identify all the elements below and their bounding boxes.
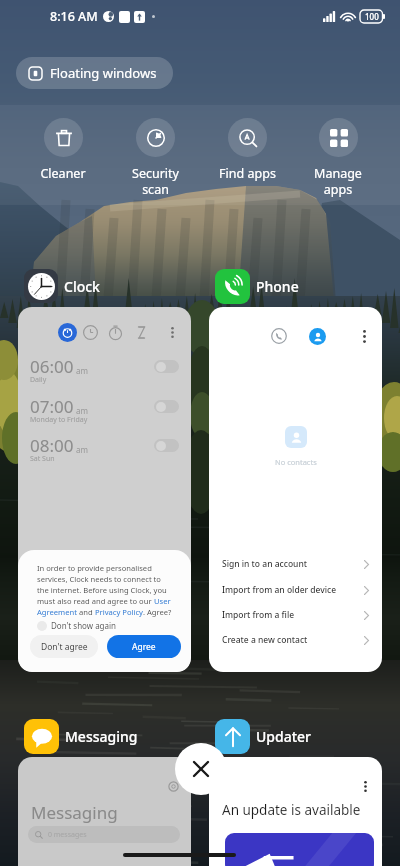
button[interactable]: Import from a file bbox=[209, 602, 382, 628]
staticText: 0 messages bbox=[48, 830, 87, 840]
staticText: Privacy Policy bbox=[95, 607, 143, 617]
staticText: User bbox=[154, 596, 171, 606]
staticText: 08:00 bbox=[30, 434, 74, 457]
staticText: am bbox=[76, 444, 88, 455]
staticText: Daily bbox=[30, 375, 47, 385]
button[interactable]: An update is available bbox=[209, 757, 382, 866]
button[interactable]: Agree bbox=[107, 635, 181, 658]
staticText: Sign in to an account bbox=[222, 558, 307, 570]
staticText: Don't show again bbox=[51, 620, 117, 631]
staticText: am bbox=[76, 405, 88, 416]
staticText: . Agree? bbox=[143, 607, 172, 617]
staticText: Phone bbox=[256, 277, 299, 296]
staticText: Agree bbox=[132, 641, 156, 653]
button[interactable]: 07:00 bbox=[18, 393, 191, 431]
staticText: the internet. Before using Clock, you bbox=[37, 585, 167, 595]
staticText: Cleaner bbox=[40, 165, 86, 182]
staticText: Floating windows bbox=[50, 64, 157, 82]
staticText: Messaging bbox=[65, 727, 138, 746]
staticText: am bbox=[76, 365, 88, 376]
staticText: Security scan bbox=[132, 165, 179, 197]
staticText: In order to provide personalised bbox=[37, 563, 152, 573]
button[interactable]: 06:00 bbox=[18, 307, 191, 672]
button[interactable]: Cleaner bbox=[17, 118, 109, 182]
button[interactable]: Find apps bbox=[201, 118, 293, 182]
staticText: must also read and agree to our bbox=[37, 596, 154, 606]
staticText: Agreement bbox=[37, 607, 77, 617]
button[interactable]: Floating windows bbox=[16, 57, 173, 89]
button[interactable]: Messaging bbox=[18, 757, 191, 866]
staticText: Don't agree bbox=[41, 641, 88, 653]
button[interactable]: Close all apps bbox=[175, 743, 227, 795]
staticText: Clock bbox=[64, 277, 100, 296]
button[interactable]: 08:00 bbox=[18, 432, 191, 470]
staticText: Monday to Friday bbox=[30, 415, 88, 425]
button[interactable]: Import from an older device bbox=[209, 577, 382, 603]
staticText: Manage apps bbox=[314, 165, 362, 197]
button[interactable]: Create a new contact bbox=[209, 627, 382, 653]
button[interactable]: Security scan bbox=[109, 118, 201, 197]
button[interactable]: 06:00 bbox=[18, 353, 191, 391]
button[interactable]: No contacts bbox=[209, 307, 382, 672]
staticText: Import from an older device bbox=[222, 584, 337, 596]
staticText: An update is available bbox=[222, 801, 361, 819]
staticText: 8:16 AM bbox=[50, 8, 98, 25]
staticText: and bbox=[77, 607, 95, 617]
staticText: 100 bbox=[365, 11, 379, 22]
staticText: Import from a file bbox=[222, 609, 295, 621]
staticText: Create a new contact bbox=[222, 634, 308, 646]
staticText: Updater bbox=[256, 727, 312, 746]
button[interactable]: Manage apps bbox=[293, 118, 383, 197]
staticText: services, Clock needs to connect to bbox=[37, 574, 161, 584]
button[interactable]: Sign in to an account bbox=[209, 551, 382, 577]
button[interactable]: Don't show again bbox=[37, 620, 117, 631]
staticText: 06:00 bbox=[30, 355, 74, 378]
staticText: 07:00 bbox=[30, 395, 74, 418]
staticText: No contacts bbox=[275, 457, 317, 467]
staticText: Messaging bbox=[31, 801, 118, 824]
staticText: Find apps bbox=[219, 165, 276, 182]
button[interactable]: Don't agree bbox=[30, 635, 98, 658]
staticText: Sat Sun bbox=[30, 454, 55, 464]
